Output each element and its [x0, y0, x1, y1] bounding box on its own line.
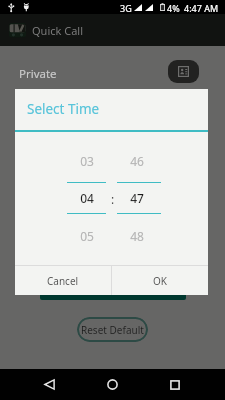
button[interactable]	[40, 260, 186, 300]
button[interactable]: Cancel	[15, 266, 111, 295]
staticText: 3G	[120, 2, 132, 14]
staticText: 03	[80, 153, 94, 169]
button[interactable]: Quick Call	[0, 14, 225, 46]
staticText: 4:47 AM	[184, 2, 219, 14]
button[interactable]: OK	[112, 266, 208, 295]
staticText: OK	[153, 274, 167, 288]
staticText: 4%	[167, 2, 180, 14]
staticText: Cancel	[47, 274, 79, 288]
staticText: 46	[130, 153, 144, 169]
staticText: Select Time	[27, 100, 100, 118]
staticText: 04	[80, 190, 94, 206]
staticText: Reset Default	[81, 323, 144, 337]
button[interactable]: Recent apps	[149, 369, 200, 400]
button[interactable]: Home	[86, 369, 138, 400]
staticText: 47	[130, 190, 144, 206]
button[interactable]: Pick contact	[168, 60, 199, 83]
staticText: 48	[130, 228, 144, 244]
button[interactable]: Reset Default	[77, 317, 148, 342]
staticText: Quick Call	[32, 23, 84, 38]
staticText: Private	[19, 66, 57, 82]
staticText: 05	[80, 228, 94, 244]
button[interactable]: Back	[24, 369, 75, 400]
staticText: :	[111, 191, 115, 205]
